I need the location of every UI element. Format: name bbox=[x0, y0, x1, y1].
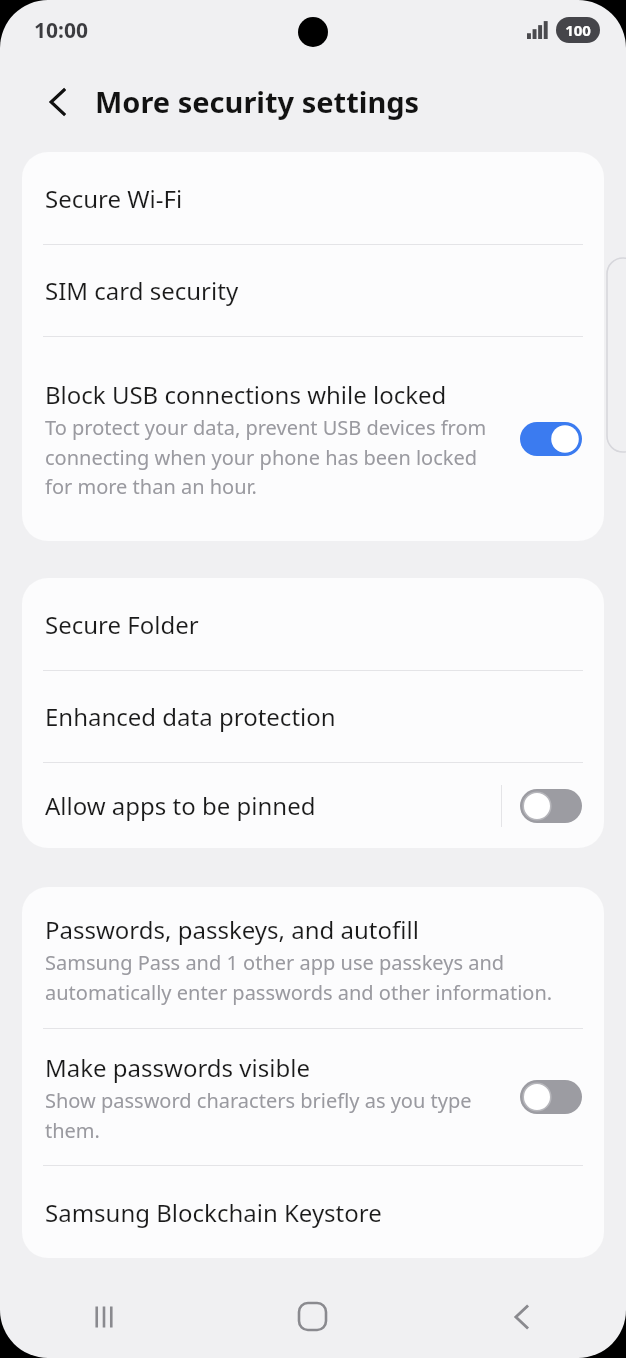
staticText: Secure Folder bbox=[45, 608, 199, 641]
button[interactable]: Toggle off bbox=[520, 789, 582, 823]
staticText: Block USB connections while locked bbox=[45, 378, 447, 411]
button[interactable]: Passwords, passkeys, and autofill bbox=[22, 887, 604, 1028]
staticText: SIM card security bbox=[45, 274, 239, 307]
staticText: Show password characters briefly as you … bbox=[45, 1087, 506, 1144]
button[interactable]: Toggle off bbox=[520, 1080, 582, 1114]
staticText: Make passwords visible bbox=[45, 1051, 310, 1084]
staticText: To protect your data, prevent USB device… bbox=[45, 414, 506, 500]
button[interactable]: Recent apps bbox=[0, 1275, 208, 1358]
staticText: 10:00 bbox=[34, 16, 88, 45]
button[interactable]: Allow apps to be pinned bbox=[22, 763, 604, 848]
button[interactable]: Secure Wi-Fi bbox=[22, 152, 604, 244]
button[interactable]: SIM card security bbox=[22, 245, 604, 336]
staticText: Passwords, passkeys, and autofill bbox=[45, 913, 419, 946]
button[interactable]: Toggle on bbox=[520, 422, 582, 456]
staticText: 100 bbox=[565, 20, 591, 40]
button[interactable]: Samsung Blockchain Keystore bbox=[22, 1166, 604, 1258]
button[interactable]: Back bbox=[30, 74, 86, 130]
staticText: Allow apps to be pinned bbox=[45, 789, 501, 822]
staticText: Enhanced data protection bbox=[45, 700, 336, 733]
button[interactable]: Home bbox=[208, 1275, 417, 1358]
staticText: More security settings bbox=[95, 82, 420, 121]
staticText: Secure Wi-Fi bbox=[45, 182, 183, 215]
button[interactable]: Make passwords visible bbox=[22, 1029, 604, 1165]
button[interactable]: Back bbox=[417, 1275, 626, 1358]
button[interactable]: Block USB connections while locked bbox=[22, 337, 604, 541]
button[interactable]: Secure Folder bbox=[22, 578, 604, 670]
button[interactable]: Enhanced data protection bbox=[22, 671, 604, 762]
staticText: Samsung Pass and 1 other app use passkey… bbox=[45, 949, 582, 1006]
staticText: Samsung Blockchain Keystore bbox=[45, 1196, 382, 1229]
